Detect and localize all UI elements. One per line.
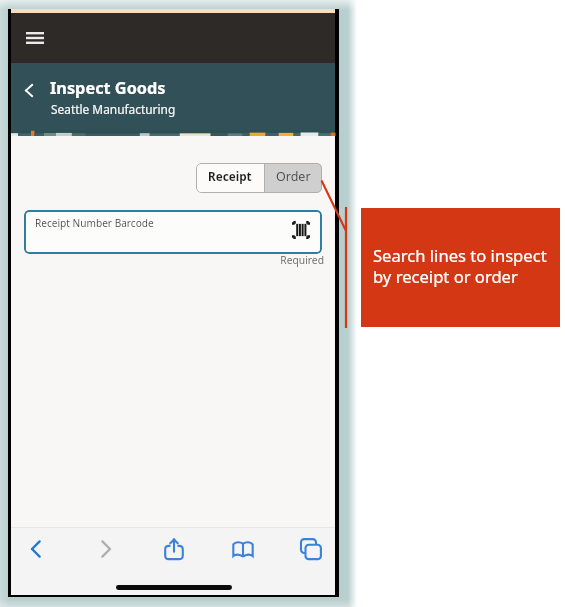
button[interactable]: Forward bbox=[89, 533, 121, 565]
button[interactable]: Back bbox=[21, 533, 53, 565]
staticText: Receipt bbox=[208, 168, 252, 184]
staticText: Order bbox=[276, 168, 311, 185]
button[interactable]: Share bbox=[158, 533, 190, 565]
button[interactable]: Bookmarks bbox=[227, 533, 259, 565]
button[interactable]: Order bbox=[265, 163, 322, 193]
staticText: Search lines to inspect by receipt or or… bbox=[373, 244, 549, 288]
button[interactable]: Receipt Number Barcode bbox=[24, 210, 322, 254]
staticText: Receipt Number Barcode bbox=[35, 216, 154, 230]
staticText: Seattle Manufacturing bbox=[51, 101, 176, 117]
button[interactable]: Receipt bbox=[196, 163, 264, 193]
button[interactable]: Tabs bbox=[295, 533, 327, 565]
button[interactable]: Menu bbox=[21, 24, 49, 52]
staticText: Inspect Goods bbox=[50, 77, 166, 99]
button[interactable]: Back bbox=[16, 77, 42, 103]
staticText: Required bbox=[26, 253, 324, 267]
button[interactable]: Scan barcode bbox=[292, 221, 310, 239]
